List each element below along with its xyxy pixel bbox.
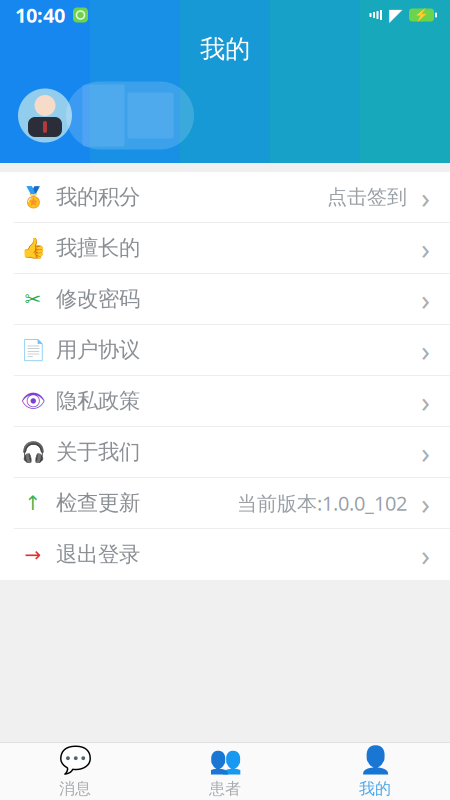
- button[interactable]: 👤: [300, 743, 450, 800]
- staticText: 👤: [358, 744, 391, 775]
- staticText: ›: [421, 279, 430, 318]
- staticText: 我的: [359, 779, 391, 799]
- staticText: 📄: [20, 339, 45, 361]
- staticText: ⚡: [414, 8, 429, 22]
- button[interactable]: Profile photo: [18, 88, 72, 142]
- staticText: 👍: [20, 237, 45, 259]
- staticText: 患者: [209, 779, 241, 799]
- staticText: 💬: [58, 744, 91, 775]
- staticText: 关于我们: [56, 439, 140, 465]
- button[interactable]: →: [0, 529, 450, 580]
- staticText: 👥: [208, 744, 241, 775]
- staticText: ›: [421, 535, 430, 574]
- staticText: →: [24, 543, 41, 566]
- staticText: 退出登录: [56, 541, 140, 568]
- staticText: 我的积分: [56, 184, 140, 210]
- staticText: ›: [421, 381, 430, 420]
- staticText: 👁: [20, 390, 45, 412]
- staticText: 用户协议: [56, 337, 140, 363]
- staticText: 检查更新: [56, 490, 140, 516]
- button[interactable]: 💬: [0, 743, 150, 800]
- staticText: 我擅长的: [56, 235, 140, 261]
- staticText: ›: [421, 228, 430, 267]
- staticText: ›: [421, 483, 430, 522]
- staticText: ◤: [389, 5, 402, 25]
- staticText: ✂: [24, 288, 41, 310]
- staticText: 消息: [59, 779, 91, 799]
- staticText: 当前版本:1.0.0_102: [237, 490, 407, 516]
- staticText: 修改密码: [56, 286, 140, 312]
- staticText: 点击签到: [327, 185, 407, 209]
- button[interactable]: 🏅: [0, 172, 450, 223]
- button[interactable]: 👁: [0, 376, 450, 427]
- staticText: ›: [421, 330, 430, 369]
- button[interactable]: 🎧: [0, 427, 450, 478]
- button[interactable]: 📄: [0, 325, 450, 376]
- staticText: 🎧: [20, 441, 45, 463]
- staticText: ›: [421, 432, 430, 471]
- staticText: 🏅: [20, 186, 45, 208]
- staticText: ↑: [24, 492, 41, 514]
- button[interactable]: 👍: [0, 223, 450, 274]
- button[interactable]: ↑: [0, 478, 450, 529]
- button[interactable]: 👥: [150, 743, 300, 800]
- staticText: 10:40: [15, 2, 65, 28]
- staticText: ›: [421, 177, 430, 216]
- button[interactable]: ✂: [0, 274, 450, 325]
- staticText: 我的: [200, 33, 250, 64]
- staticText: 隐私政策: [56, 388, 140, 414]
